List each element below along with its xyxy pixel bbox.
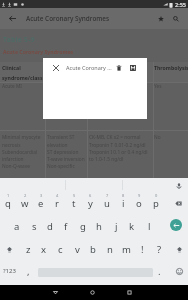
staticText: Yes	[154, 83, 162, 90]
staticText: 9	[138, 193, 141, 198]
button[interactable]: Shift	[1, 238, 18, 260]
button[interactable]: 0	[148, 192, 164, 214]
staticText: i	[122, 197, 125, 210]
button[interactable]: 7	[99, 192, 115, 214]
staticText: 4	[56, 193, 59, 198]
button[interactable]: .	[152, 260, 166, 282]
button[interactable]: h	[91, 215, 107, 237]
button[interactable]: m	[118, 238, 134, 260]
button[interactable]: l	[141, 215, 157, 237]
button[interactable]: Backspace	[166, 192, 188, 214]
button[interactable]: 6	[82, 192, 98, 214]
staticText: m	[122, 243, 131, 256]
staticText: n	[107, 243, 113, 256]
staticText: 7	[106, 193, 109, 198]
staticText: Minimal myocyte necrosis Subendocardial …	[2, 134, 41, 169]
button[interactable]: n	[102, 238, 118, 260]
staticText: t	[72, 197, 76, 210]
button[interactable]: 8	[115, 192, 131, 214]
staticText: ?	[157, 243, 162, 256]
staticText: w	[21, 197, 29, 210]
staticText: y	[88, 197, 93, 210]
staticText: v	[75, 243, 80, 256]
button[interactable]: 4	[49, 192, 65, 214]
staticText: No	[154, 134, 161, 141]
button[interactable]: d	[42, 215, 58, 237]
staticText: k	[129, 220, 135, 233]
staticText: q	[5, 197, 11, 210]
button[interactable]: c	[52, 238, 68, 260]
button[interactable]: ?123	[0, 260, 21, 282]
staticText: e	[38, 197, 44, 210]
staticText: s	[32, 220, 37, 233]
button[interactable]: k	[124, 215, 140, 237]
staticText: g	[80, 220, 86, 233]
button[interactable]: z	[20, 238, 36, 260]
button[interactable]: f	[58, 215, 74, 237]
staticText: CK-MB, CK x2 = normal Troponin T 0.01-0.…	[89, 134, 148, 162]
staticText: 5	[73, 193, 76, 198]
staticText: u	[104, 197, 110, 210]
button[interactable]: Caps lock	[171, 238, 188, 260]
button[interactable]: !	[134, 238, 150, 260]
staticText: .	[158, 265, 161, 278]
staticText: 8	[122, 193, 125, 198]
staticText: f	[64, 220, 68, 233]
staticText: ECG	[47, 64, 57, 71]
button[interactable]: Emoji	[171, 260, 188, 282]
staticText: Transient ST elevation ST depression T-w…	[47, 134, 85, 169]
staticText: b	[90, 243, 96, 256]
button[interactable]: ,	[21, 260, 35, 282]
button[interactable]: j	[108, 215, 124, 237]
staticText: Acute MI	[2, 83, 22, 90]
button[interactable]: a	[9, 215, 25, 237]
staticText: h	[96, 220, 102, 233]
staticText: 1	[7, 193, 10, 198]
staticText: Cardiac enzymes	[89, 64, 112, 81]
staticText: ,	[27, 265, 30, 278]
button[interactable]: 1	[0, 192, 16, 214]
button[interactable]: Search	[167, 8, 185, 29]
staticText: l	[148, 220, 151, 233]
button[interactable]: ?	[151, 238, 167, 260]
button[interactable]: Back	[2, 8, 22, 29]
button[interactable]: 3	[33, 192, 49, 214]
button[interactable]: g	[75, 215, 91, 237]
button[interactable]: Save	[127, 62, 139, 74]
button[interactable]: Home	[82, 285, 102, 300]
staticText: Acute Coronary Syndromes	[3, 48, 74, 55]
staticText: !	[141, 243, 144, 256]
staticText: Clinical syndrome/class	[2, 64, 43, 81]
staticText: x	[41, 243, 47, 256]
button[interactable]: 2	[17, 192, 33, 214]
staticText: 6	[89, 193, 92, 198]
staticText: r	[55, 197, 59, 210]
staticText: j	[115, 220, 118, 233]
staticText: 3	[40, 193, 43, 198]
staticText: Thrombolysis	[154, 64, 188, 71]
button[interactable]: 5	[66, 192, 82, 214]
button[interactable]: Enter	[164, 214, 188, 236]
button[interactable]: Recents	[119, 285, 139, 300]
button[interactable]: x	[36, 238, 52, 260]
button[interactable]: b	[85, 238, 101, 260]
staticText: 2:55	[175, 1, 186, 8]
button[interactable]: Back	[45, 285, 65, 300]
button[interactable]: 9	[131, 192, 147, 214]
button[interactable]: Voice input	[172, 179, 185, 192]
button[interactable]: Bookmark	[152, 8, 170, 29]
staticText: a	[14, 220, 20, 233]
button[interactable]: Close	[50, 62, 62, 74]
staticText: z	[26, 243, 31, 256]
staticText: Acute Coronary Syndromes	[26, 14, 110, 23]
button[interactable]: s	[26, 215, 42, 237]
button[interactable]: v	[69, 238, 85, 260]
staticText: 2	[24, 193, 27, 198]
staticText: Table 5-9	[3, 35, 35, 44]
button[interactable]: Delete	[113, 62, 125, 74]
staticText: 0	[155, 193, 158, 198]
staticText: ?123	[3, 267, 16, 275]
